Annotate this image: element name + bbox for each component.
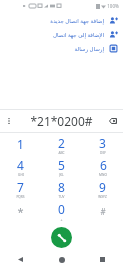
button[interactable]: إضافة جهة اتصال جديدة <box>0 13 123 27</box>
staticText: TUV <box>58 195 65 199</box>
staticText: 9 <box>99 179 106 195</box>
button[interactable]: More options <box>2 114 16 128</box>
staticText: 4 <box>17 157 24 173</box>
staticText: JKL <box>59 173 64 177</box>
staticText: إضافة جهة اتصال جديدة <box>50 17 104 24</box>
button[interactable]: 6 <box>82 156 123 178</box>
button[interactable]: الإضافة إلى جهة اتصال <box>0 27 123 41</box>
button[interactable]: 5 <box>41 156 82 178</box>
staticText: الإضافة إلى جهة اتصال <box>52 31 104 38</box>
button[interactable]: 9 <box>82 178 123 200</box>
staticText: 2 <box>58 135 65 151</box>
staticText: 7 <box>17 179 24 195</box>
staticText: 8 <box>58 179 65 195</box>
staticText: WXYZ <box>98 195 107 199</box>
staticText: 0 <box>58 201 65 217</box>
staticText: 6 <box>100 157 107 173</box>
button[interactable]: Home <box>41 253 82 266</box>
staticText: GHI <box>18 173 24 177</box>
staticText: MNO <box>99 173 107 177</box>
staticText: 3 <box>99 135 106 151</box>
staticText: # <box>100 206 106 217</box>
staticText: ABC <box>58 151 65 155</box>
button[interactable]: Pound <box>82 200 123 222</box>
button[interactable]: إرسال رسالة <box>0 41 123 55</box>
button[interactable]: Star <box>0 200 41 222</box>
button[interactable]: Backspace <box>106 114 120 128</box>
button[interactable]: 0 <box>41 200 82 222</box>
button[interactable]: Recent apps <box>82 253 123 266</box>
button[interactable]: Back <box>0 253 41 266</box>
staticText: DEF <box>100 151 106 155</box>
staticText: 5 <box>58 157 65 173</box>
staticText: *21*0200# <box>30 113 93 129</box>
button[interactable]: 2 <box>41 134 82 156</box>
button[interactable]: 3 <box>82 134 123 156</box>
staticText: + <box>60 217 63 222</box>
button[interactable]: 7 <box>0 178 41 200</box>
staticText: PQRS <box>16 195 25 199</box>
button[interactable]: 8 <box>41 178 82 200</box>
staticText: 100% <box>107 3 119 9</box>
staticText: 1 <box>17 136 24 152</box>
staticText: * <box>17 204 24 219</box>
button[interactable]: 4 <box>0 156 41 178</box>
button[interactable]: 1 <box>0 134 41 156</box>
staticText: إرسال رسالة <box>74 45 104 52</box>
button[interactable]: Call <box>51 227 72 248</box>
